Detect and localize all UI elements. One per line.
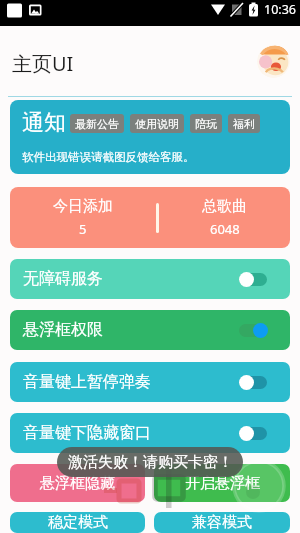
staticText: 激活失败！请购买卡密！: [68, 453, 233, 472]
button[interactable]: Profile avatar: [257, 45, 290, 78]
staticText: 开启悬浮框: [185, 474, 260, 493]
staticText: 总歌曲: [202, 197, 247, 216]
staticText: 主页UI: [12, 50, 74, 77]
staticText: 10:36: [264, 1, 296, 18]
button[interactable]: 通知: [10, 100, 290, 174]
button[interactable]: Disabled toggle: [238, 374, 268, 390]
staticText: 使用说明: [135, 117, 179, 131]
staticText: 兼容模式: [192, 513, 252, 532]
button[interactable]: Enabled toggle: [238, 322, 268, 338]
button[interactable]: 福利: [228, 114, 260, 133]
staticText: 今日添加: [53, 197, 113, 216]
staticText: 6048: [210, 220, 240, 238]
button[interactable]: 开启悬浮框: [154, 464, 290, 502]
button[interactable]: 陪玩: [190, 114, 222, 133]
staticText: 5: [79, 220, 87, 238]
button[interactable]: 无障碍服务: [10, 259, 290, 299]
staticText: 稳定模式: [48, 513, 108, 532]
button[interactable]: 悬浮框权限: [10, 310, 290, 350]
staticText: 福利: [233, 117, 255, 131]
staticText: 通知: [22, 109, 66, 137]
staticText: 音量键下隐藏窗口: [23, 423, 151, 443]
button[interactable]: 稳定模式: [10, 512, 145, 533]
button[interactable]: 兼容模式: [154, 512, 290, 533]
button[interactable]: 悬浮框隐藏: [10, 464, 145, 502]
button[interactable]: 最新公告: [70, 114, 124, 133]
staticText: 悬浮框权限: [23, 320, 103, 340]
staticText: 音量键上暂停弹奏: [23, 372, 151, 392]
button[interactable]: 音量键下隐藏窗口: [10, 413, 290, 453]
staticText: 无障碍服务: [23, 269, 103, 289]
button[interactable]: 使用说明: [130, 114, 184, 133]
button[interactable]: 音量键上暂停弹奏: [10, 362, 290, 402]
staticText: 陪玩: [195, 117, 217, 131]
button[interactable]: Disabled toggle: [238, 425, 268, 441]
staticText: 软件出现错误请截图反馈给客服。: [22, 150, 195, 164]
staticText: 悬浮框隐藏: [40, 474, 115, 493]
staticText: 最新公告: [75, 117, 119, 131]
button[interactable]: Disabled toggle: [238, 271, 268, 287]
